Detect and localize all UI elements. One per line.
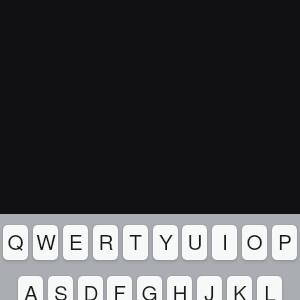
button[interactable]: Y: [153, 225, 178, 260]
button[interactable]: D: [78, 276, 103, 300]
button[interactable]: I: [212, 225, 237, 260]
staticText: L: [264, 277, 276, 300]
button[interactable]: Q: [3, 225, 28, 260]
staticText: Q: [7, 226, 24, 256]
staticText: J: [204, 277, 215, 300]
button[interactable]: A: [18, 276, 43, 300]
staticText: K: [233, 277, 247, 300]
button[interactable]: U: [182, 225, 207, 260]
button[interactable]: W: [33, 225, 58, 260]
staticText: G: [141, 277, 158, 300]
button[interactable]: S: [48, 276, 73, 300]
button[interactable]: G: [137, 276, 162, 300]
button[interactable]: J: [197, 276, 222, 300]
button[interactable]: F: [107, 276, 132, 300]
staticText: O: [246, 226, 263, 256]
button[interactable]: P: [272, 225, 297, 260]
button[interactable]: R: [93, 225, 118, 260]
staticText: S: [54, 277, 68, 300]
staticText: I: [222, 226, 228, 256]
button[interactable]: O: [242, 225, 267, 260]
staticText: T: [129, 226, 142, 256]
staticText: W: [36, 226, 56, 256]
staticText: E: [69, 226, 83, 256]
staticText: D: [83, 277, 99, 300]
staticText: A: [24, 277, 38, 300]
staticText: R: [98, 226, 114, 256]
staticText: U: [187, 226, 203, 256]
button[interactable]: T: [123, 225, 148, 260]
staticText: P: [278, 226, 292, 256]
button[interactable]: E: [63, 225, 88, 260]
button[interactable]: H: [167, 276, 192, 300]
staticText: F: [113, 277, 126, 300]
staticText: Y: [159, 226, 173, 256]
staticText: H: [172, 277, 188, 300]
button[interactable]: K: [227, 276, 252, 300]
button[interactable]: L: [257, 276, 282, 300]
